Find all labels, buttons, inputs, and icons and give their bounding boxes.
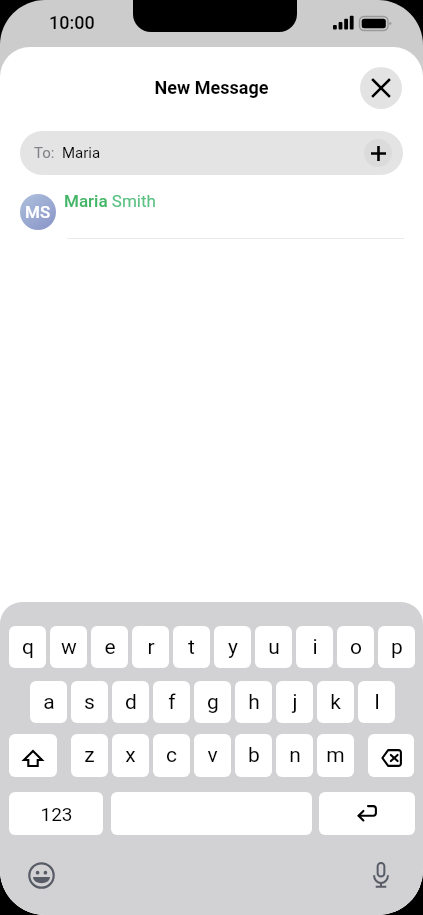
button[interactable]: u — [255, 626, 292, 668]
staticText: b — [248, 743, 260, 768]
button[interactable]: MS — [0, 188, 423, 238]
staticText: New Message — [0, 77, 423, 98]
button[interactable]: j — [276, 681, 313, 723]
button[interactable]: p — [378, 626, 415, 668]
button[interactable]: b — [235, 734, 272, 777]
button[interactable]: x — [112, 734, 149, 777]
button[interactable]: r — [132, 626, 169, 668]
button[interactable]: Emoji keyboard — [27, 861, 55, 889]
button[interactable]: v — [194, 734, 231, 777]
button[interactable]: To: — [20, 131, 403, 175]
button[interactable]: z — [71, 734, 108, 777]
button[interactable]: Close — [360, 67, 402, 109]
staticText: e — [104, 635, 116, 660]
button[interactable]: k — [317, 681, 354, 723]
staticText: d — [125, 690, 137, 715]
button[interactable]: Add contact — [364, 139, 392, 167]
staticText: l — [374, 690, 380, 715]
button[interactable]: f — [153, 681, 190, 723]
button[interactable]: w — [50, 626, 87, 668]
button[interactable]: 123 — [9, 792, 103, 835]
button[interactable]: o — [337, 626, 374, 668]
button[interactable]: a — [30, 681, 67, 723]
staticText: g — [207, 690, 219, 715]
staticText: f — [168, 690, 176, 715]
staticText: v — [207, 743, 218, 768]
button[interactable]: m — [317, 734, 354, 777]
staticText: i — [312, 635, 318, 660]
staticText: Maria Smith — [64, 191, 156, 211]
button[interactable]: Backspace — [368, 734, 414, 777]
staticText: t — [188, 635, 195, 660]
button[interactable]: e — [91, 626, 128, 668]
button[interactable]: n — [276, 734, 313, 777]
button[interactable]: l — [358, 681, 395, 723]
staticText: o — [350, 635, 362, 660]
staticText: j — [292, 690, 298, 715]
staticText: To: — [34, 144, 55, 162]
button[interactable]: q — [9, 626, 46, 668]
button[interactable]: Shift — [9, 734, 57, 777]
staticText: c — [166, 743, 177, 768]
button[interactable]: Dictation — [367, 859, 395, 889]
staticText: p — [391, 635, 403, 660]
staticText: u — [268, 635, 280, 660]
button[interactable]: y — [214, 626, 251, 668]
button[interactable]: Return — [319, 792, 415, 835]
staticText: Maria — [62, 144, 101, 162]
button[interactable]: s — [71, 681, 108, 723]
button[interactable]: h — [235, 681, 272, 723]
staticText: k — [330, 690, 341, 715]
staticText: x — [125, 743, 136, 768]
staticText: h — [248, 690, 260, 715]
staticText: z — [84, 743, 95, 768]
staticText: a — [43, 690, 55, 715]
button[interactable]: g — [194, 681, 231, 723]
staticText: w — [61, 635, 77, 660]
staticText: m — [326, 743, 345, 768]
button[interactable]: i — [296, 626, 333, 668]
staticText: r — [147, 635, 155, 660]
button[interactable]: d — [112, 681, 149, 723]
staticText: 123 — [40, 803, 73, 825]
staticText: 10:00 — [49, 12, 95, 33]
staticText: s — [84, 690, 95, 715]
button[interactable]: t — [173, 626, 210, 668]
staticText: q — [22, 635, 34, 660]
button[interactable]: c — [153, 734, 190, 777]
staticText: y — [228, 635, 238, 660]
staticText: n — [289, 743, 301, 768]
staticText: MS — [25, 202, 51, 222]
